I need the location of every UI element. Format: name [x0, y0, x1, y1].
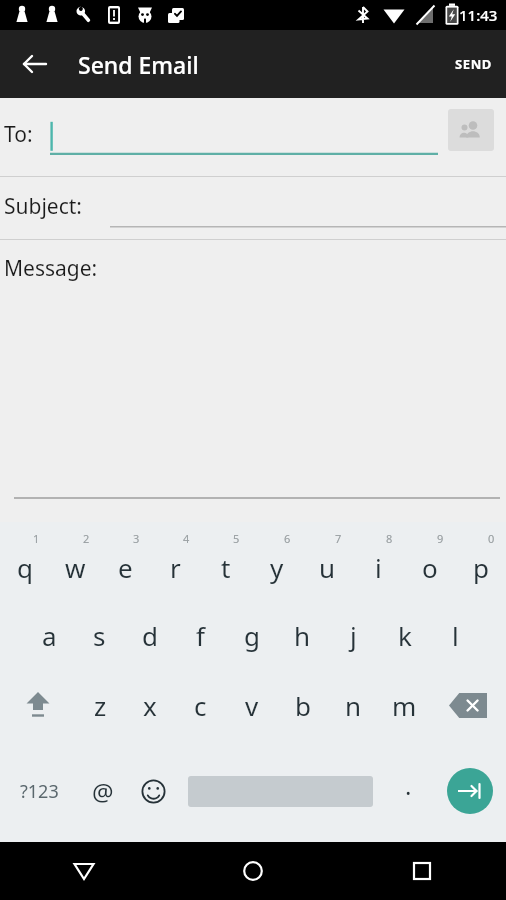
button[interactable]: 0: [455, 522, 506, 600]
staticText: b: [295, 688, 311, 723]
button[interactable]: .: [383, 740, 433, 842]
staticText: 0: [488, 531, 495, 546]
button[interactable]: d: [124, 600, 175, 670]
button[interactable]: 8: [353, 522, 404, 600]
button[interactable]: Emoji: [128, 740, 178, 842]
staticText: 4: [183, 531, 190, 546]
staticText: c: [194, 688, 207, 723]
staticText: t: [221, 550, 231, 585]
staticText: @: [92, 775, 114, 808]
staticText: 9: [437, 531, 444, 546]
button[interactable]: Back: [12, 41, 58, 87]
staticText: 8: [386, 531, 393, 546]
button[interactable]: Shift: [0, 670, 75, 740]
button[interactable]: b: [277, 670, 328, 740]
staticText: s: [93, 618, 106, 653]
button[interactable]: [50, 107, 438, 167]
staticText: 11:43: [459, 5, 498, 25]
button[interactable]: a: [24, 600, 74, 670]
button[interactable]: SEND: [441, 30, 506, 98]
staticText: m: [392, 688, 417, 723]
button[interactable]: Home: [224, 842, 282, 900]
staticText: e: [118, 550, 133, 585]
staticText: n: [345, 688, 362, 723]
staticText: 1: [33, 531, 40, 546]
button[interactable]: Backspace: [430, 670, 506, 740]
button[interactable]: Space: [178, 740, 383, 842]
staticText: i: [375, 550, 382, 585]
staticText: 2: [83, 531, 90, 546]
staticText: r: [170, 550, 181, 585]
button[interactable]: c: [175, 670, 226, 740]
staticText: 5: [233, 531, 240, 546]
button[interactable]: x: [125, 670, 175, 740]
staticText: u: [319, 550, 336, 585]
button[interactable]: Pick contact: [448, 109, 494, 151]
staticText: p: [473, 550, 489, 585]
button[interactable]: 4: [150, 522, 200, 600]
button[interactable]: s: [74, 600, 124, 670]
button[interactable]: v: [226, 670, 277, 740]
staticText: j: [350, 618, 357, 653]
staticText: k: [398, 618, 412, 653]
button[interactable]: m: [379, 670, 430, 740]
staticText: d: [142, 618, 158, 653]
button[interactable]: 7: [302, 522, 353, 600]
button[interactable]: g: [226, 600, 277, 670]
button[interactable]: f: [175, 600, 226, 670]
button[interactable]: @: [78, 740, 128, 842]
staticText: y: [270, 550, 284, 585]
staticText: a: [42, 618, 57, 653]
button[interactable]: k: [379, 600, 430, 670]
staticText: 7: [335, 531, 342, 546]
button[interactable]: ?123: [0, 740, 78, 842]
button[interactable]: 1: [0, 522, 50, 600]
button[interactable]: z: [75, 670, 125, 740]
button[interactable]: Back: [55, 842, 113, 900]
staticText: .: [405, 769, 412, 802]
staticText: l: [452, 618, 459, 653]
button[interactable]: 3: [100, 522, 150, 600]
staticText: h: [294, 618, 311, 653]
staticText: g: [244, 618, 260, 653]
button[interactable]: Message:: [0, 240, 506, 510]
staticText: o: [422, 550, 438, 585]
button[interactable]: Recents: [393, 842, 451, 900]
staticText: v: [245, 688, 259, 723]
staticText: z: [94, 688, 107, 723]
staticText: Message:: [4, 254, 98, 283]
staticText: x: [143, 688, 157, 723]
button[interactable]: n: [328, 670, 379, 740]
staticText: 6: [284, 531, 291, 546]
button[interactable]: h: [277, 600, 328, 670]
staticText: f: [196, 618, 205, 653]
staticText: w: [65, 550, 86, 585]
button[interactable]: 2: [50, 522, 100, 600]
button[interactable]: j: [328, 600, 379, 670]
button[interactable]: 5: [200, 522, 251, 600]
staticText: 3: [133, 531, 140, 546]
button[interactable]: 6: [251, 522, 302, 600]
staticText: Subject:: [4, 192, 82, 221]
staticText: q: [17, 550, 33, 585]
button[interactable]: [110, 182, 506, 234]
button[interactable]: l: [430, 600, 481, 670]
staticText: ?123: [20, 779, 59, 804]
staticText: SEND: [455, 55, 492, 73]
staticText: To:: [4, 120, 33, 149]
staticText: Send Email: [78, 49, 199, 80]
button[interactable]: 9: [404, 522, 455, 600]
button[interactable]: Enter: [433, 740, 506, 842]
